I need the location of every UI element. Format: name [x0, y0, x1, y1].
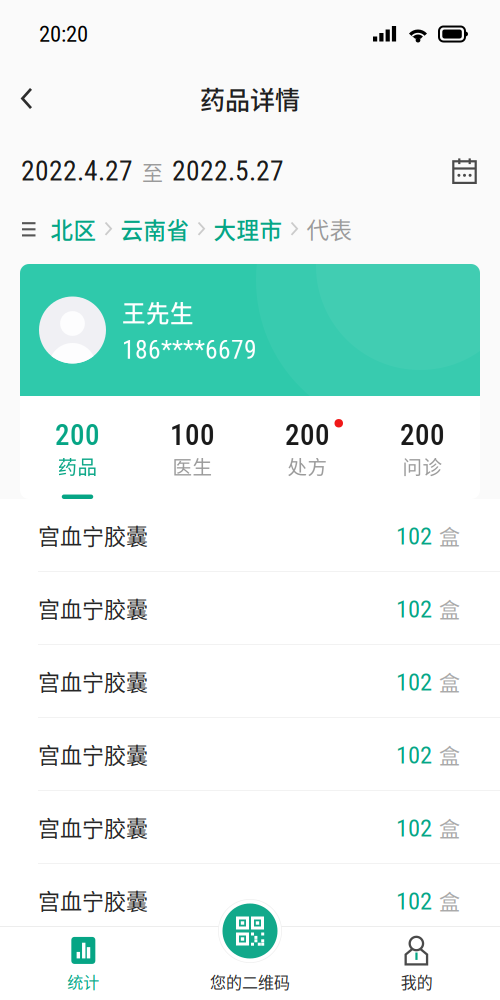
button[interactable]: 宫血宁胶囊 — [0, 499, 500, 572]
button[interactable]: 统计 — [0, 921, 167, 1000]
button[interactable]: 云南省 — [117, 207, 192, 251]
staticText: 至 — [142, 156, 163, 186]
staticText: 200 — [285, 418, 330, 452]
staticText: 宫血宁胶囊 — [38, 592, 148, 624]
button[interactable]: 我的 — [333, 921, 500, 1000]
staticText: 我的 — [401, 970, 433, 993]
button[interactable]: 宫血宁胶囊 — [0, 791, 500, 864]
staticText: 盒 — [439, 666, 460, 697]
staticText: 100 — [170, 418, 215, 452]
staticText: 医生 — [172, 452, 212, 480]
button[interactable]: 200 — [20, 396, 135, 499]
staticText: 2022.4.27 — [21, 155, 133, 187]
button[interactable]: Filter regions — [0, 211, 47, 247]
staticText: 大理市 — [213, 213, 282, 245]
button[interactable]: 宫血宁胶囊 — [0, 718, 500, 791]
button[interactable]: 2022.4.27 — [21, 147, 284, 195]
button[interactable]: 宫血宁胶囊 — [0, 572, 500, 645]
button[interactable]: 北区 — [47, 207, 99, 251]
button[interactable]: 宫血宁胶囊 — [0, 645, 500, 718]
staticText: 102 — [396, 668, 432, 697]
button[interactable]: 100 — [135, 396, 250, 499]
staticText: 2022.5.27 — [172, 155, 284, 187]
staticText: 102 — [396, 522, 432, 551]
staticText: 盒 — [439, 812, 460, 843]
staticText: 200 — [55, 418, 100, 452]
staticText: 您的二维码 — [210, 970, 290, 993]
staticText: 102 — [396, 814, 432, 843]
staticText: 处方 — [287, 452, 327, 480]
staticText: 20:20 — [39, 21, 88, 47]
staticText: 盒 — [439, 739, 460, 770]
staticText: 代表 — [306, 213, 352, 245]
staticText: 王先生 — [122, 295, 194, 329]
staticText: 102 — [396, 741, 432, 770]
staticText: 186****6679 — [122, 335, 257, 365]
button[interactable]: 200 — [365, 396, 480, 499]
staticText: 北区 — [50, 213, 96, 245]
button[interactable]: Back — [0, 71, 50, 125]
button[interactable]: 宫血宁胶囊 — [0, 864, 500, 936]
staticText: 宫血宁胶囊 — [38, 738, 148, 770]
button[interactable]: 大理市 — [210, 207, 285, 251]
button[interactable]: 代表 — [303, 207, 355, 251]
staticText: 盒 — [439, 520, 460, 551]
button[interactable]: 200 — [250, 396, 365, 499]
staticText: 药品详情 — [200, 80, 300, 117]
button[interactable]: 您的二维码 — [217, 898, 283, 964]
staticText: 云南省 — [120, 213, 189, 245]
staticText: 宫血宁胶囊 — [38, 811, 148, 843]
staticText: 宫血宁胶囊 — [38, 665, 148, 697]
staticText: 盒 — [439, 885, 460, 916]
button[interactable]: 您的二维码 — [167, 921, 333, 1000]
staticText: 200 — [400, 418, 445, 452]
staticText: 统计 — [67, 970, 99, 993]
staticText: 宫血宁胶囊 — [38, 884, 148, 916]
button[interactable]: Select date range — [447, 149, 482, 192]
staticText: 102 — [396, 887, 432, 916]
staticText: 盒 — [439, 593, 460, 624]
staticText: 102 — [396, 595, 432, 624]
staticText: 问诊 — [402, 452, 442, 480]
staticText: 药品 — [57, 452, 97, 480]
staticText: 宫血宁胶囊 — [38, 519, 148, 551]
